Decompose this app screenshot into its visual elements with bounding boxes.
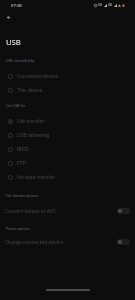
staticText: No data transfer — [17, 174, 56, 181]
staticText: MIDI — [17, 146, 29, 153]
staticText: File transfer options — [6, 193, 39, 198]
button[interactable]: PTP — [0, 156, 135, 170]
button[interactable]: USB tethering — [0, 128, 135, 142]
staticText: USB — [6, 37, 21, 47]
staticText: Power options — [6, 226, 30, 231]
button[interactable]: Charge connected device — [0, 235, 135, 249]
staticText: File transfer — [17, 118, 45, 125]
staticText: Charge connected device — [5, 239, 117, 246]
staticText: USB tethering — [17, 132, 50, 139]
button[interactable]: No data transfer — [0, 170, 135, 184]
staticText: Connected device — [17, 73, 58, 80]
staticText: 4G — [108, 3, 113, 7]
button[interactable]: This device — [0, 83, 135, 97]
button[interactable]: Connected device — [0, 69, 135, 83]
staticText: Use USB for — [6, 103, 26, 108]
button[interactable]: Back — [2, 11, 15, 24]
button[interactable]: MIDI — [0, 142, 135, 156]
staticText: PTP — [17, 160, 26, 167]
staticText: Convert videos to AVC — [5, 208, 117, 215]
staticText: This device — [17, 87, 43, 94]
staticText: 07:38 — [11, 3, 22, 9]
staticText: 5G — [98, 3, 103, 7]
button[interactable]: File transfer — [0, 114, 135, 128]
staticText: USB controlled by — [6, 58, 35, 63]
button[interactable]: Convert videos to AVC — [0, 204, 135, 218]
